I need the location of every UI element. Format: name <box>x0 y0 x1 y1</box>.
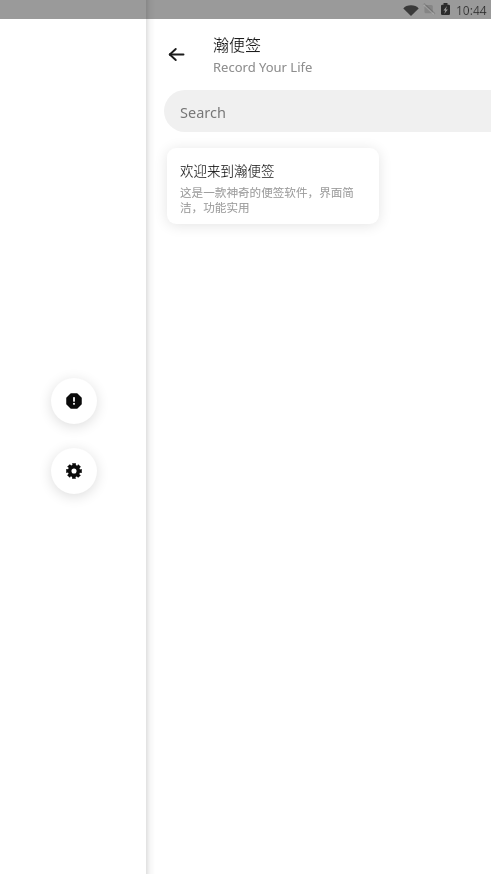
button[interactable]: 欢迎来到瀚便签 <box>167 148 379 224</box>
staticText: 瀚便签 <box>213 32 262 55</box>
staticText: Record Your Life <box>213 58 313 76</box>
button[interactable]: Search <box>164 90 491 132</box>
staticText: Search <box>180 102 226 122</box>
staticText: 这是一款神奇的便签软件，界面简洁，功能实用 <box>180 184 360 216</box>
button[interactable]: Info <box>51 378 97 424</box>
staticText: 欢迎来到瀚便签 <box>180 160 275 180</box>
button[interactable]: Settings <box>51 448 97 494</box>
staticText: 10:44 <box>456 2 487 18</box>
button[interactable]: Back <box>159 37 193 71</box>
